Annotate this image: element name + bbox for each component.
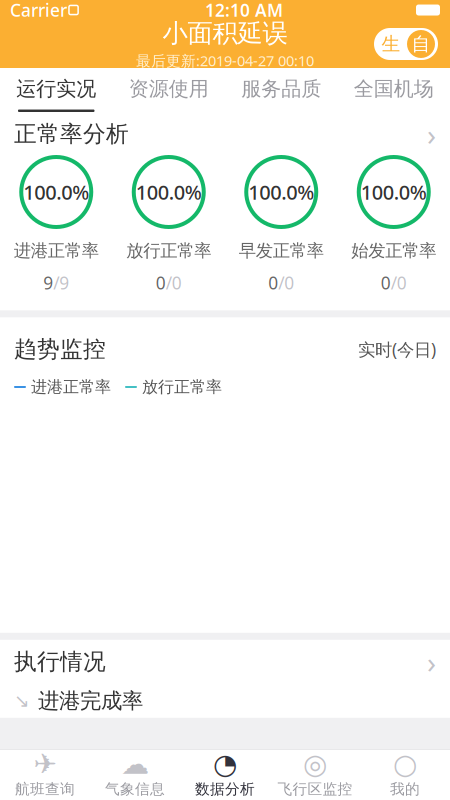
staticText: ○ — [393, 748, 417, 780]
staticText: /9 — [53, 271, 69, 294]
staticText: ☁ — [121, 748, 149, 780]
staticText: 进港正常率 — [14, 240, 99, 261]
button[interactable]: ○ — [360, 750, 450, 800]
staticText: 服务品质 — [241, 76, 321, 101]
staticText: 我的 — [390, 780, 420, 798]
staticText: 始发正常率 — [351, 240, 436, 261]
staticText: 趋势监控 — [14, 335, 106, 363]
staticText: Carrier — [10, 0, 67, 21]
button[interactable]: 正常率分析 — [0, 112, 450, 156]
staticText: 执行情况 — [14, 648, 106, 676]
button[interactable]: ↘ — [0, 684, 450, 718]
staticText: › — [427, 642, 436, 681]
staticText: 全国机场 — [354, 76, 434, 101]
button[interactable]: 运行实况 — [0, 68, 112, 112]
staticText: 运行实况 — [16, 76, 96, 101]
staticText: 最后更新:2019-04-27 00:10 — [136, 51, 314, 70]
button[interactable]: ◔ — [180, 750, 270, 800]
staticText: 实时(今日) — [358, 338, 436, 361]
staticText: 进港正常率 — [31, 377, 111, 397]
button[interactable]: ☁ — [90, 750, 180, 800]
button[interactable]: 执行情况 — [0, 640, 450, 684]
staticText: 数据分析 — [195, 780, 255, 798]
button[interactable]: 切换生产自然日 — [374, 28, 438, 60]
staticText: /0 — [278, 271, 294, 294]
staticText: 12:10 AM — [205, 0, 283, 21]
staticText: › — [427, 114, 436, 153]
staticText: ✈ — [33, 748, 56, 780]
staticText: 0 — [381, 271, 391, 294]
staticText: 气象信息 — [105, 780, 165, 798]
staticText: 0 — [156, 271, 166, 294]
staticText: 100.0% — [361, 179, 427, 205]
staticText: 自 — [411, 32, 430, 55]
staticText: 100.0% — [248, 179, 314, 205]
staticText: 小面积延误 — [162, 18, 287, 49]
staticText: 进港完成率 — [38, 688, 143, 714]
button[interactable]: 资源使用 — [112, 68, 225, 112]
button[interactable]: ✈ — [0, 750, 90, 800]
staticText: 生 — [381, 32, 400, 55]
staticText: 9 — [43, 271, 53, 294]
staticText: /0 — [391, 271, 407, 294]
staticText: 放行正常率 — [126, 240, 211, 261]
staticText: 资源使用 — [129, 76, 209, 101]
staticText: 早发正常率 — [239, 240, 324, 261]
staticText: 0 — [268, 271, 278, 294]
staticText: /0 — [166, 271, 182, 294]
staticText: 100.0% — [23, 179, 89, 205]
button[interactable]: 全国机场 — [337, 68, 450, 112]
button[interactable]: ◎ — [270, 750, 360, 800]
staticText: ◔ — [213, 748, 237, 780]
staticText: 100.0% — [136, 179, 202, 205]
staticText: ↘ — [14, 690, 30, 711]
staticText: 航班查询 — [15, 780, 75, 798]
staticText: 正常率分析 — [14, 120, 129, 148]
button[interactable]: 服务品质 — [225, 68, 337, 112]
staticText: 放行正常率 — [142, 377, 222, 397]
staticText: ◎ — [303, 748, 327, 780]
staticText: 飞行区监控 — [277, 780, 352, 798]
